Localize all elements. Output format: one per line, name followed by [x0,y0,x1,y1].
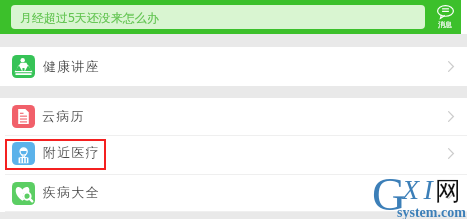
staticText: 附近医疗 [42,144,99,160]
button[interactable]: 消息 [429,0,461,34]
staticText: XI [402,174,438,205]
staticText: system.com [397,205,466,219]
button[interactable]: 云病历 [0,98,467,135]
staticText: 疾病大全 [42,184,99,200]
staticText: 云病历 [42,108,85,124]
button[interactable]: 附近医疗 [0,136,467,174]
staticText: 消息 [438,20,452,29]
button[interactable]: 月经超过5天还没来怎么办 [11,5,425,29]
staticText: 网 [435,175,461,208]
button[interactable]: 健康讲座 [0,47,467,86]
staticText: G [372,168,406,219]
staticText: 健康讲座 [42,58,99,74]
staticText: 月经超过5天还没来怎么办 [20,9,159,25]
button[interactable]: 疾病大全 [0,175,467,211]
